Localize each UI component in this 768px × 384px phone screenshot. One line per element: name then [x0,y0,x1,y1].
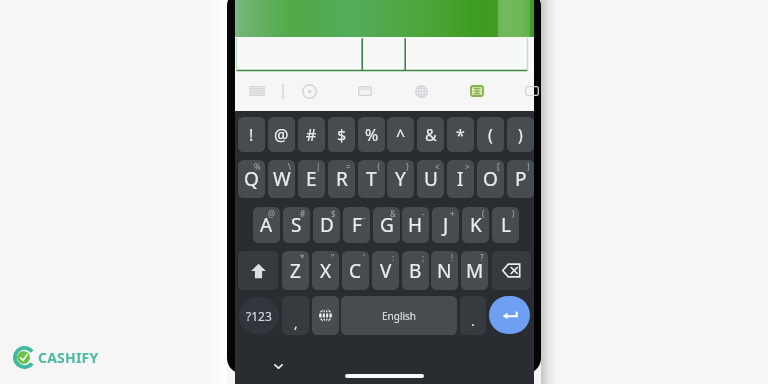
button[interactable]: N [431,251,458,290]
button[interactable]: Cards [352,78,378,104]
staticText: \ [288,161,291,172]
staticText: * [456,124,465,146]
staticText: % [365,124,379,146]
button[interactable]: Hide keyboard [269,357,287,375]
staticText: | [316,161,321,172]
staticText: } [406,161,410,172]
staticText: U [424,166,438,192]
staticText: O [483,166,498,192]
button[interactable]: V [372,251,399,290]
button[interactable]: Symbols [239,297,279,334]
button[interactable]: More [519,78,545,104]
button[interactable]: S [283,207,310,243]
button[interactable]: L [492,207,519,243]
button[interactable]: H [402,207,429,243]
staticText: B [409,258,422,284]
button[interactable]: @ [268,117,295,152]
staticText: > [465,161,470,172]
button[interactable]: . [460,296,486,335]
staticText: ; [422,252,425,263]
staticText: @ [268,208,276,219]
button[interactable]: X [312,251,339,290]
button[interactable]: O [477,160,504,198]
staticText: ! [451,252,454,263]
staticText: ! [249,124,254,146]
staticText: J [443,212,449,238]
button[interactable]: D [313,207,340,243]
button[interactable]: English [341,296,457,335]
button[interactable]: # [298,117,325,152]
button[interactable]: ( [477,117,504,152]
staticText: M [466,258,484,284]
staticText: + [450,208,455,219]
staticText: ) [512,208,515,219]
staticText: C [349,258,362,284]
button[interactable]: P [507,160,534,198]
button[interactable]: B [402,251,429,290]
staticText: ? [480,252,484,263]
button[interactable]: Sheets [464,78,490,104]
button[interactable]: Enter [489,296,530,334]
button[interactable]: I [447,160,474,198]
button[interactable]: R [328,160,355,198]
staticText: ^ [396,124,406,146]
staticText: V [380,258,392,284]
button[interactable]: U [417,160,444,198]
button[interactable]: F [343,207,370,243]
staticText: W [273,166,291,192]
button[interactable]: Z [282,251,309,290]
staticText: S [291,212,302,238]
button[interactable]: Y [387,160,414,198]
button[interactable]: , [282,296,309,335]
button[interactable]: Play [296,78,322,104]
staticText: R [336,166,348,192]
button[interactable]: A [253,207,280,243]
button[interactable]: G [373,207,400,243]
button[interactable]: Browser [408,78,434,104]
button[interactable]: Q [238,160,265,198]
staticText: Q [244,166,259,192]
button[interactable]: Change language [312,296,339,335]
button[interactable]: J [432,207,459,243]
button[interactable]: Shift [238,251,278,290]
staticText: { [377,161,381,172]
staticText: @ [274,124,289,146]
staticText: E [306,166,317,192]
button[interactable]: E [298,160,325,198]
button[interactable]: K [462,207,489,243]
staticText: D [320,212,334,238]
staticText: % [254,161,261,172]
staticText: * [300,252,305,263]
staticText: [ [497,161,500,172]
button[interactable]: ! [238,117,265,152]
staticText: # [306,124,317,146]
button[interactable]: W [268,160,295,198]
button[interactable]: T [358,160,385,198]
button[interactable]: * [447,117,474,152]
staticText: Z [290,258,301,284]
button[interactable]: Menu [244,78,270,104]
button[interactable]: $ [328,117,355,152]
staticText: X [320,258,332,284]
button[interactable]: & [417,117,444,152]
staticText: ( [488,124,493,146]
staticText: & [390,208,396,219]
button[interactable]: % [358,117,385,152]
staticText: ( [482,208,485,219]
button[interactable]: ^ [387,117,414,152]
staticText: T [366,166,377,192]
staticText: ) [518,124,523,146]
staticText: K [470,212,482,238]
staticText: English [382,309,417,323]
staticText: # [300,208,306,219]
staticText: $ [337,124,347,146]
staticText: Y [395,166,406,192]
button[interactable]: ) [507,117,534,152]
staticText: G [380,212,394,238]
staticText: P [515,166,527,192]
staticText: A [260,212,273,238]
button[interactable]: M [461,251,488,290]
button[interactable]: Backspace [492,251,531,290]
button[interactable]: C [342,251,369,290]
staticText: N [437,258,452,284]
